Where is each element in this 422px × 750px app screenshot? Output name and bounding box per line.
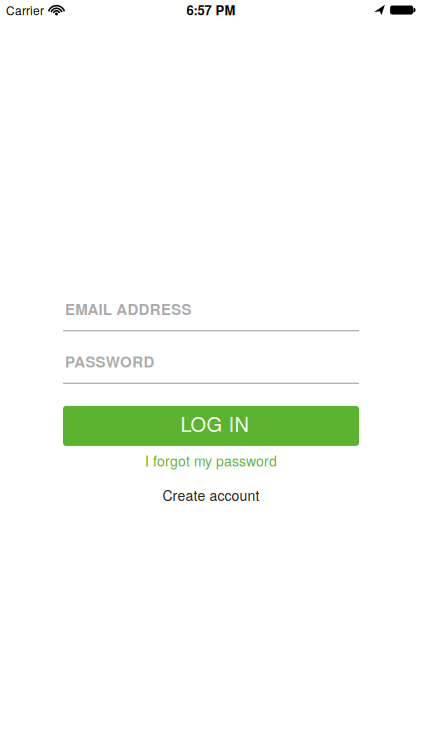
button[interactable]: LOG IN (63, 406, 359, 446)
staticText: Create account (162, 485, 259, 505)
button[interactable]: I forgot my password (145, 450, 277, 470)
button[interactable]: Create account (162, 485, 259, 505)
staticText: PASSWORD (65, 351, 154, 372)
staticText: EMAIL ADDRESS (65, 298, 191, 319)
staticText: LOG IN (180, 409, 248, 438)
staticText: Carrier (6, 1, 44, 18)
staticText: I forgot my password (145, 450, 277, 470)
button[interactable]: PASSWORD (63, 351, 359, 384)
staticText: 6:57 PM (186, 1, 235, 19)
button[interactable]: EMAIL ADDRESS (63, 298, 359, 331)
